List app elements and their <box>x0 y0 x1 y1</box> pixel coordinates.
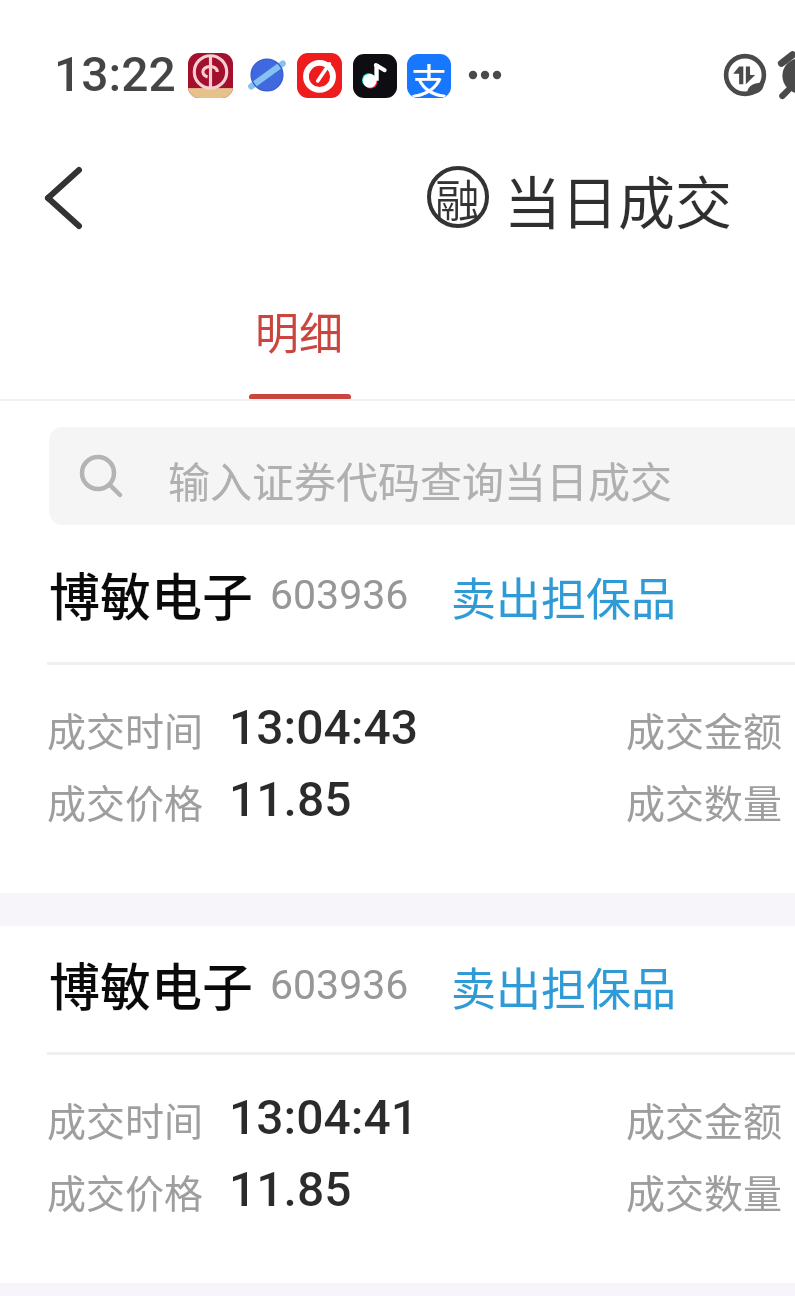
staticText: 成交金额 <box>626 1091 783 1147</box>
staticText: 融 <box>435 166 481 228</box>
button[interactable]: Back <box>24 160 100 236</box>
staticText: 输入证券代码查询当日成交 <box>168 449 673 510</box>
staticText: 11.85 <box>229 1161 352 1217</box>
staticText: 博敏电子 <box>49 557 254 631</box>
staticText: 卖出担保品 <box>451 564 677 629</box>
staticText: 成交时间 <box>47 701 204 757</box>
staticText: 支 <box>411 54 448 97</box>
staticText: 成交金额 <box>626 701 783 757</box>
staticText: 成交价格 <box>47 773 204 829</box>
staticText: 成交时间 <box>47 1091 204 1147</box>
button[interactable]: 博敏电子 <box>0 548 795 893</box>
staticText: 13:04:41 <box>229 1089 418 1145</box>
button[interactable]: Search by security code <box>49 427 795 525</box>
staticText: 明细 <box>255 299 343 363</box>
button[interactable]: 明细 <box>215 286 385 401</box>
staticText: 当日成交 <box>504 158 732 241</box>
staticText: 卖出担保品 <box>451 954 677 1019</box>
staticText: 603936 <box>270 961 409 1009</box>
staticText: 成交数量 <box>626 1163 783 1219</box>
staticText: 603936 <box>270 571 409 619</box>
staticText: 13:04:43 <box>229 699 418 755</box>
button[interactable]: 博敏电子 <box>0 938 795 1283</box>
staticText: 成交数量 <box>626 773 783 829</box>
staticText: 13:22 <box>54 46 176 102</box>
staticText: 11.85 <box>229 771 352 827</box>
staticText: 博敏电子 <box>49 947 254 1021</box>
staticText: 成交价格 <box>47 1163 204 1219</box>
